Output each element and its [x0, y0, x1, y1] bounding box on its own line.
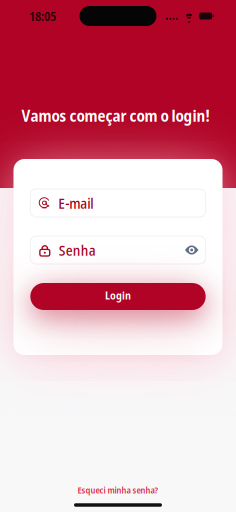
- button[interactable]: Login: [30, 283, 206, 310]
- staticText: Login: [105, 288, 131, 303]
- button[interactable]: Esqueci minha senha?: [69, 479, 166, 501]
- staticText: Senha: [59, 240, 96, 260]
- staticText: Vamos começar com o login!: [21, 105, 209, 126]
- button[interactable]: E-mail: [30, 189, 206, 217]
- staticText: 18:05: [29, 7, 56, 25]
- button[interactable]: Senha: [30, 236, 206, 264]
- staticText: E-mail: [58, 193, 93, 213]
- staticText: Esqueci minha senha?: [77, 484, 158, 496]
